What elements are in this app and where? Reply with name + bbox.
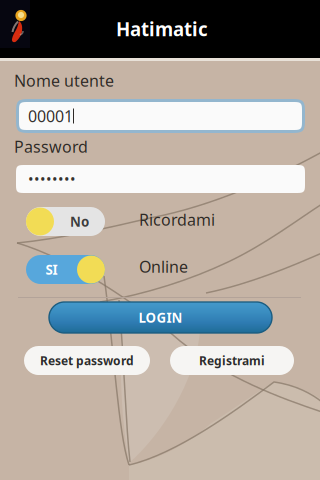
- button[interactable]: SI: [26, 255, 105, 284]
- button[interactable]: Reset password: [24, 346, 150, 375]
- staticText: LOGIN: [138, 309, 182, 326]
- staticText: Hatimatic: [116, 17, 208, 41]
- button[interactable]: No: [26, 207, 105, 236]
- staticText: Ricordami: [139, 209, 215, 230]
- staticText: Nome utente: [14, 70, 114, 91]
- staticText: No: [70, 213, 89, 230]
- staticText: 00001: [28, 105, 73, 127]
- staticText: Password: [14, 136, 88, 157]
- staticText: SI: [45, 261, 57, 278]
- button[interactable]: Registrami: [170, 346, 294, 375]
- button[interactable]: LOGIN: [49, 302, 272, 333]
- staticText: Online: [139, 256, 188, 277]
- staticText: Registrami: [199, 352, 265, 368]
- staticText: Reset password: [40, 352, 134, 368]
- staticText: ••••••••: [28, 169, 76, 189]
